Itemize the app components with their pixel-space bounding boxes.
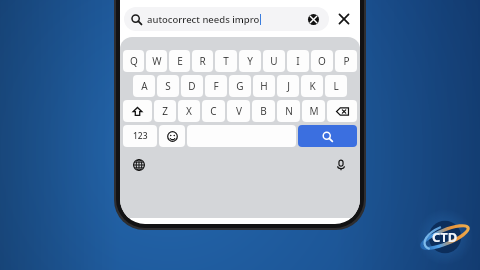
staticText: N: [285, 104, 293, 118]
button[interactable]: I: [287, 50, 309, 72]
staticText: W: [152, 54, 162, 68]
button[interactable]: R: [192, 50, 213, 72]
button[interactable]: D: [181, 75, 203, 97]
staticText: L: [333, 79, 339, 93]
staticText: K: [309, 79, 316, 93]
button[interactable]: E: [169, 50, 190, 72]
button[interactable]: Clear query: [304, 10, 322, 28]
staticText: E: [177, 54, 183, 68]
staticText: M: [309, 104, 319, 118]
staticText: T: [223, 54, 229, 68]
button[interactable]: K: [301, 75, 323, 97]
button[interactable]: L: [325, 75, 347, 97]
button[interactable]: Backspace: [327, 100, 357, 122]
staticText: R: [199, 54, 206, 68]
button[interactable]: Change keyboard language: [129, 155, 149, 175]
button[interactable]: 123: [123, 125, 157, 147]
staticText: B: [260, 104, 267, 118]
button[interactable]: C: [202, 100, 225, 122]
staticText: I: [296, 54, 300, 68]
button[interactable]: A: [133, 75, 155, 97]
button[interactable]: Q: [123, 50, 144, 72]
button[interactable]: G: [229, 75, 251, 97]
staticText: H: [260, 79, 268, 93]
staticText: P: [343, 54, 350, 68]
staticText: S: [165, 79, 171, 93]
button[interactable]: S: [157, 75, 179, 97]
button[interactable]: W: [146, 50, 167, 72]
staticText: D: [188, 79, 196, 93]
staticText: autocorrect needs impro: [147, 13, 260, 26]
button[interactable]: T: [215, 50, 237, 72]
staticText: G: [236, 79, 244, 93]
button[interactable]: Shift: [123, 100, 152, 122]
staticText: O: [318, 54, 326, 68]
staticText: C: [210, 104, 217, 118]
button[interactable]: O: [311, 50, 333, 72]
button[interactable]: J: [277, 75, 299, 97]
staticText: X: [186, 104, 192, 118]
staticText: 123: [133, 130, 148, 142]
button[interactable]: Close search: [332, 7, 356, 31]
button[interactable]: X: [178, 100, 200, 122]
button[interactable]: Voice input: [331, 155, 351, 175]
button[interactable]: P: [335, 50, 357, 72]
staticText: Y: [247, 54, 253, 68]
button[interactable]: V: [227, 100, 250, 122]
staticText: F: [213, 79, 219, 93]
button[interactable]: Z: [154, 100, 176, 122]
button[interactable]: U: [263, 50, 285, 72]
staticText: A: [141, 79, 148, 93]
staticText: V: [236, 104, 242, 118]
staticText: Z: [162, 104, 168, 118]
button[interactable]: M: [302, 100, 325, 122]
staticText: Q: [130, 54, 138, 68]
button[interactable]: Emoji: [159, 125, 185, 147]
button[interactable]: H: [253, 75, 275, 97]
button[interactable]: N: [277, 100, 300, 122]
button[interactable]: autocorrect needs impro: [124, 7, 329, 31]
button[interactable]: F: [205, 75, 227, 97]
staticText: CTD: [432, 228, 458, 246]
button[interactable]: Search: [298, 125, 357, 147]
staticText: U: [270, 54, 278, 68]
staticText: J: [287, 79, 290, 93]
button[interactable]: Y: [239, 50, 261, 72]
button[interactable]: B: [252, 100, 275, 122]
